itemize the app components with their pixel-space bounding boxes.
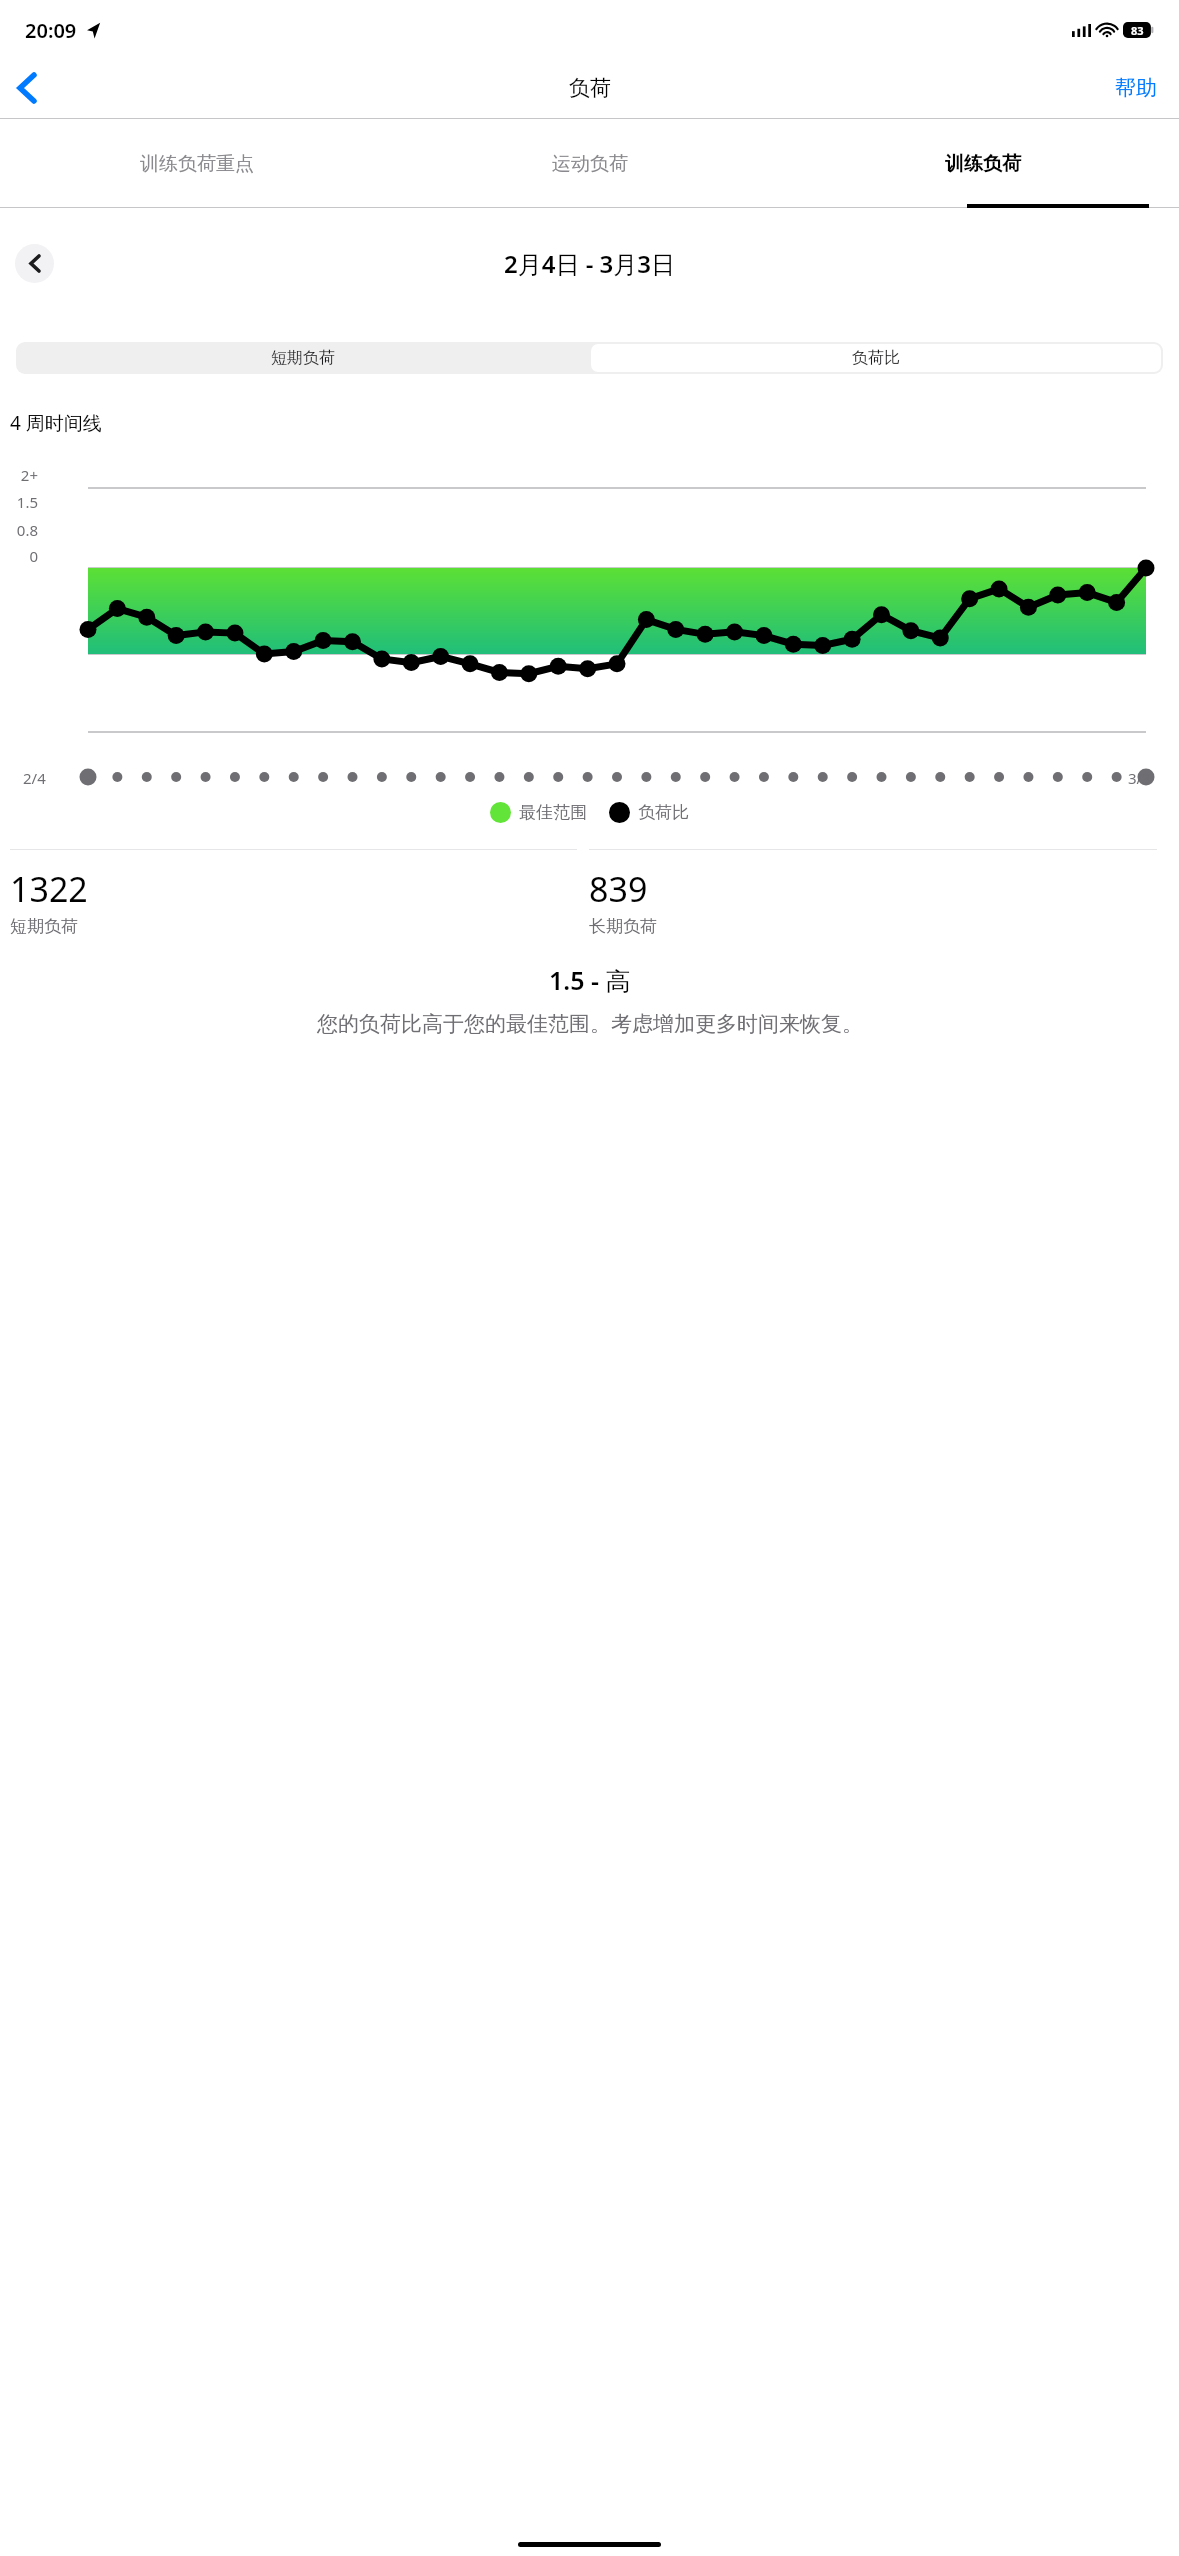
staticText: 2月4日 - 3月3日 [504, 247, 676, 280]
button[interactable]: 1322 [10, 849, 577, 937]
staticText: 负荷比 [852, 348, 900, 368]
staticText: 83 [1131, 23, 1144, 38]
staticText: 839 [589, 866, 648, 912]
button[interactable]: 运动负荷 [393, 119, 786, 208]
staticText: 3/3 [1128, 768, 1151, 788]
staticText: 20:09 [25, 17, 77, 44]
button[interactable]: 帮助 [1109, 69, 1163, 107]
button[interactable]: Previous period [15, 244, 54, 283]
staticText: 您的负荷比高于您的最佳范围。考虑增加更多时间来恢复。 [317, 1011, 863, 1037]
staticText: 短期负荷 [10, 916, 78, 937]
staticText: 训练负荷重点 [140, 152, 254, 176]
staticText: 1.5 - 高 [549, 963, 631, 997]
button[interactable]: 训练负荷 [786, 119, 1179, 208]
button[interactable]: 负荷比 [591, 344, 1161, 372]
staticText: 2+ [10, 465, 38, 485]
staticText: 4 周时间线 [10, 410, 102, 436]
staticText: 1322 [10, 866, 88, 912]
staticText: 短期负荷 [271, 348, 335, 368]
staticText: 0.8 [10, 520, 38, 540]
staticText: 负荷比 [638, 802, 689, 823]
staticText: 训练负荷 [945, 152, 1021, 176]
staticText: 0 [10, 546, 38, 566]
button[interactable]: 训练负荷重点 [0, 119, 393, 208]
button[interactable]: Back [0, 61, 54, 115]
staticText: 帮助 [1115, 75, 1157, 101]
button[interactable]: 839 [589, 849, 1157, 937]
staticText: 运动负荷 [552, 152, 628, 176]
staticText: 2/4 [23, 768, 46, 788]
staticText: 长期负荷 [589, 916, 657, 937]
staticText: 1.5 [10, 492, 38, 512]
button[interactable]: 短期负荷 [16, 342, 589, 374]
staticText: 最佳范围 [519, 802, 587, 823]
staticText: 负荷 [569, 75, 611, 101]
